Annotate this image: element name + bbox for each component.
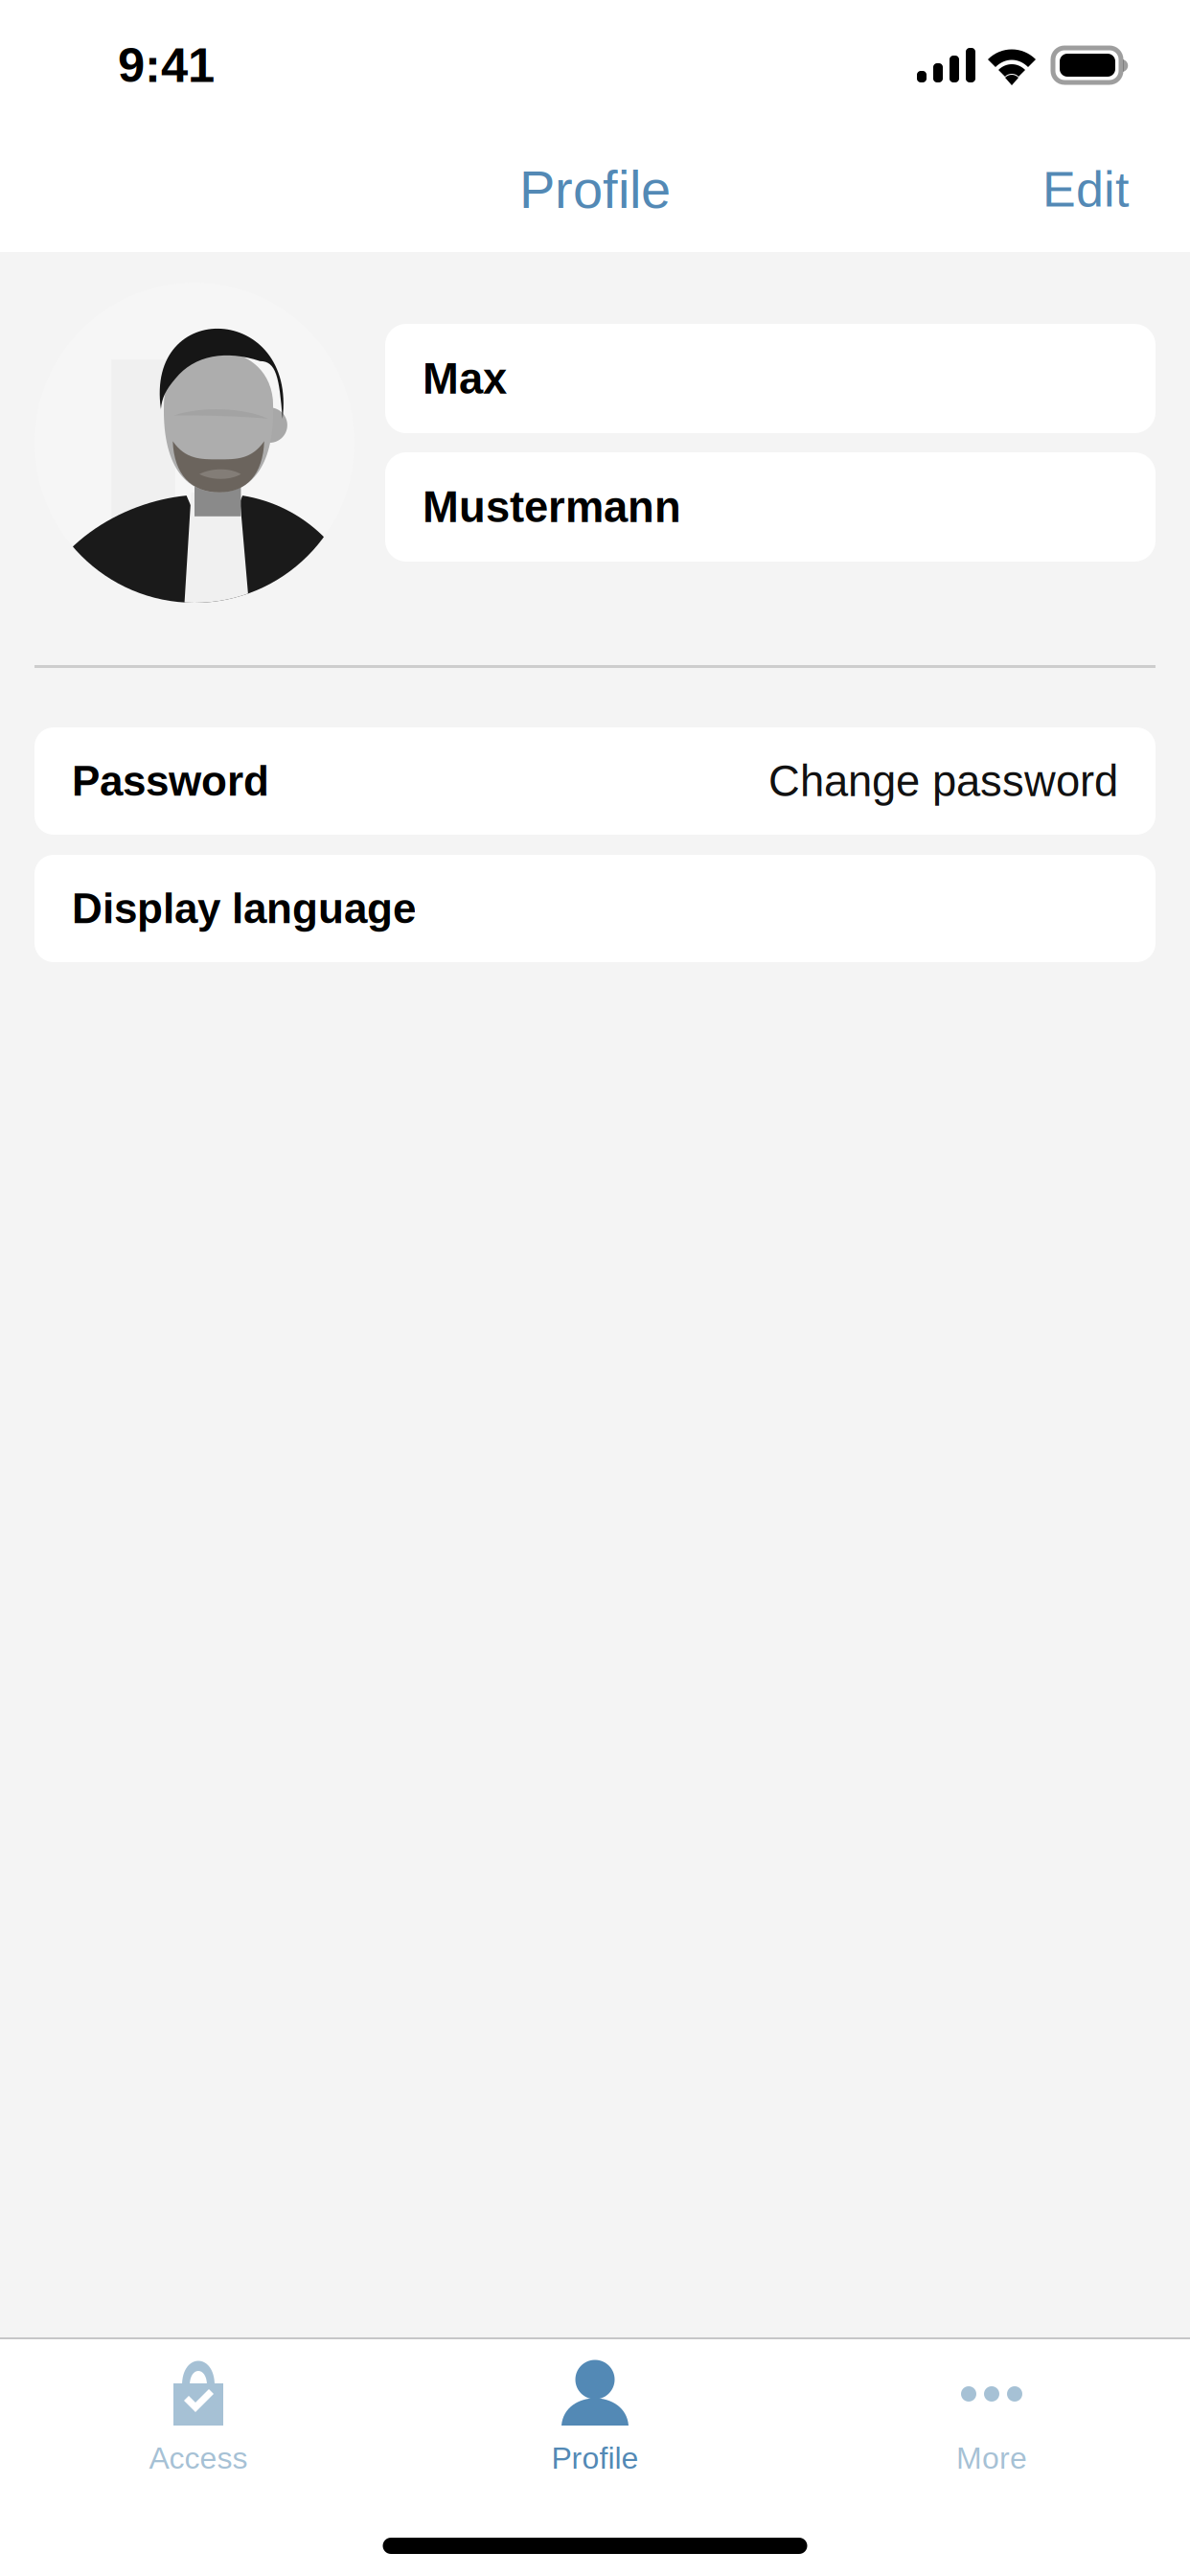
staticText: Profile xyxy=(551,2441,639,2475)
staticText: Change password xyxy=(768,757,1118,805)
staticText: Edit xyxy=(1042,161,1129,217)
button[interactable]: Profile xyxy=(397,2339,793,2481)
staticText: Display language xyxy=(72,885,416,932)
staticText: Password xyxy=(72,757,269,805)
staticText: Profile xyxy=(519,159,671,219)
staticText: Mustermann xyxy=(423,483,681,531)
staticText: More xyxy=(956,2441,1027,2475)
staticText: 9:41 xyxy=(118,38,215,92)
staticText: Access xyxy=(149,2441,248,2475)
button[interactable]: Display language xyxy=(34,855,1156,962)
button[interactable]: Edit xyxy=(1023,135,1148,244)
button[interactable]: Access xyxy=(0,2339,397,2481)
button[interactable]: Max xyxy=(385,324,1156,433)
button[interactable]: More xyxy=(793,2339,1190,2481)
button[interactable]: Mustermann xyxy=(385,452,1156,562)
button[interactable]: Password xyxy=(34,727,1156,835)
staticText: Max xyxy=(423,354,507,403)
